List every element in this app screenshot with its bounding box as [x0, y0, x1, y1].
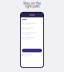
staticText: right path: [24, 4, 39, 8]
staticText: Stay on the: [23, 1, 41, 5]
button[interactable]: [22, 49, 42, 52]
